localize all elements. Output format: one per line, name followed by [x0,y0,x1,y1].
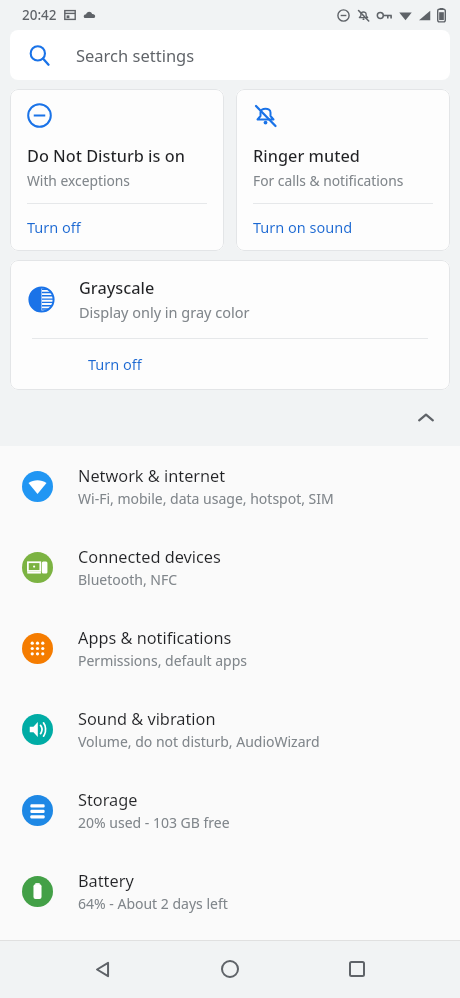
staticText: Apps & notifications [78,627,232,649]
staticText: 64% - About 2 days left [78,894,228,913]
staticText: Search settings [76,44,195,66]
button[interactable]: Recents [333,945,381,993]
button[interactable]: Collapse suggestions [408,400,444,436]
staticText: Permissions, default apps [78,651,248,670]
staticText: Bluetooth, NFC [78,570,178,589]
staticText: Wi-Fi, mobile, data usage, hotspot, SIM [78,489,334,508]
staticText: Battery [78,870,134,892]
staticText: Ringer muted [253,145,360,167]
staticText: Do Not Disturb is on [27,145,185,167]
staticText: Connected devices [78,546,221,568]
button[interactable]: Storage [0,770,460,851]
button[interactable]: Battery [0,851,460,932]
staticText: 20% used - 103 GB free [78,813,230,832]
button[interactable]: Home [206,945,254,993]
staticText: Network & internet [78,465,226,487]
staticText: Display only in gray color [79,302,250,322]
staticText: Turn off [27,217,81,237]
staticText: 20:42 [22,6,57,24]
staticText: Sound & vibration [78,708,216,730]
button[interactable]: Grayscale [10,260,450,390]
staticText: For calls & notifications [253,171,404,190]
button[interactable]: Back [79,945,127,993]
button[interactable]: Search settings [10,30,450,80]
button[interactable]: Network & internet [0,446,460,527]
button[interactable]: Do Not Disturb is on [10,89,224,251]
button[interactable]: Sound & vibration [0,689,460,770]
staticText: Grayscale [79,277,155,299]
staticText: Turn on sound [253,217,353,237]
button[interactable]: Connected devices [0,527,460,608]
staticText: With exceptions [27,171,130,190]
button[interactable]: Apps & notifications [0,608,460,689]
staticText: Volume, do not disturb, AudioWizard [78,732,320,751]
staticText: Storage [78,789,138,811]
button[interactable]: Ringer muted [236,89,450,251]
staticText: Turn off [88,354,142,374]
